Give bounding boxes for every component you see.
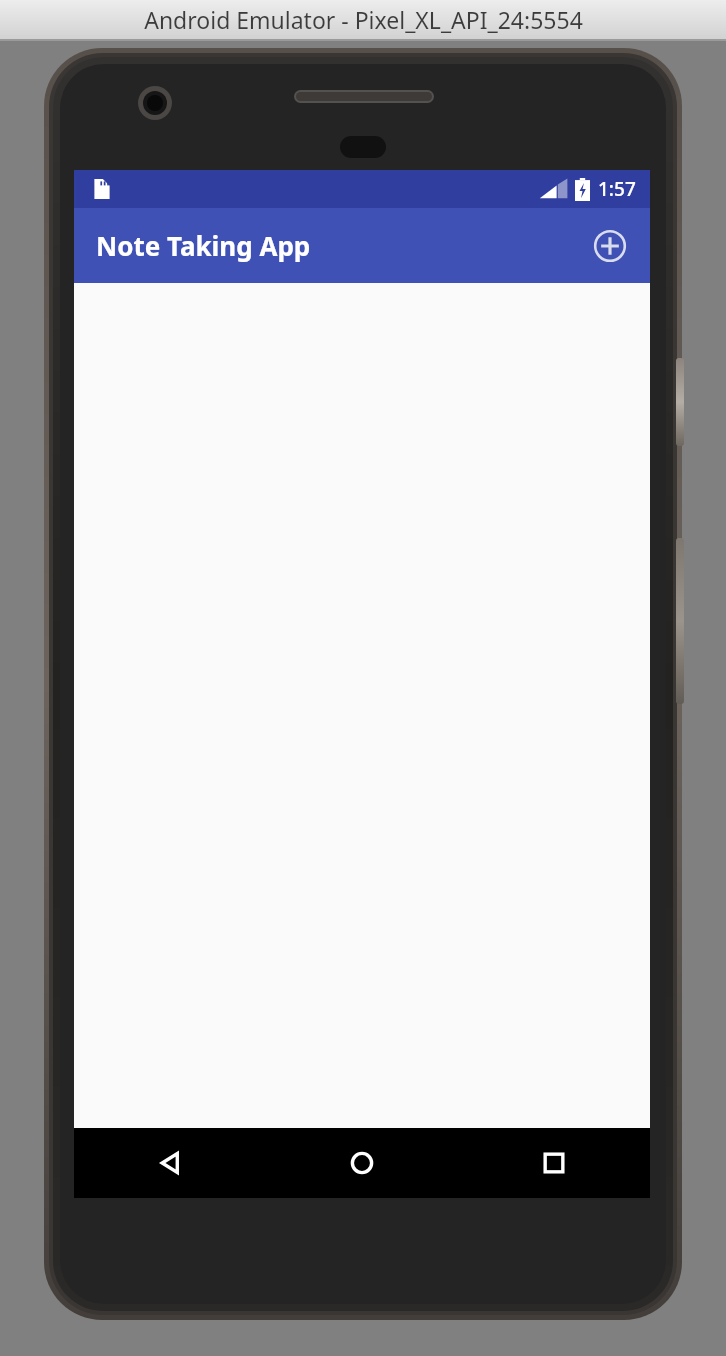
button[interactable]: Add note [584, 220, 636, 272]
staticText: Android Emulator - Pixel_XL_API_24:5554 [144, 4, 583, 35]
staticText: Note Taking App [96, 228, 311, 263]
button[interactable]: Back [74, 1128, 266, 1198]
button[interactable]: Home [266, 1128, 458, 1198]
button[interactable]: Recent apps [458, 1128, 650, 1198]
staticText: 1:57 [598, 176, 636, 202]
